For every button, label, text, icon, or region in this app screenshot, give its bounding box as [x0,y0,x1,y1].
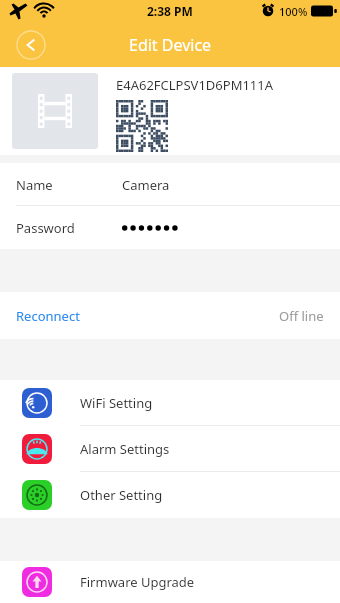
button[interactable]: Back [10,24,52,66]
button[interactable]: WiFi Setting [0,380,340,426]
staticText: Camera [122,176,170,194]
button[interactable]: Alarm Settings [0,426,340,472]
staticText: Alarm Settings [80,440,170,458]
staticText: Off line [279,307,324,325]
staticText: E4A62FCLPSV1D6PM111A [116,76,274,94]
button[interactable]: Name [0,163,340,206]
staticText: Firmware Upgrade [80,573,195,591]
button[interactable]: Device thumbnail [12,73,98,149]
staticText: Name [16,176,53,194]
staticText: 2:38 PM [147,3,193,19]
staticText: Edit Device [129,34,212,56]
staticText: Password [16,219,75,237]
button[interactable]: Firmware Upgrade [0,561,340,603]
button[interactable]: Other Setting [0,472,340,518]
staticText: WiFi Setting [80,394,153,412]
staticText: Reconnect [16,307,80,325]
staticText: Other Setting [80,486,163,504]
button[interactable]: Reconnect [0,292,340,339]
staticText: 100% [279,4,308,19]
button[interactable]: Password [0,206,340,249]
